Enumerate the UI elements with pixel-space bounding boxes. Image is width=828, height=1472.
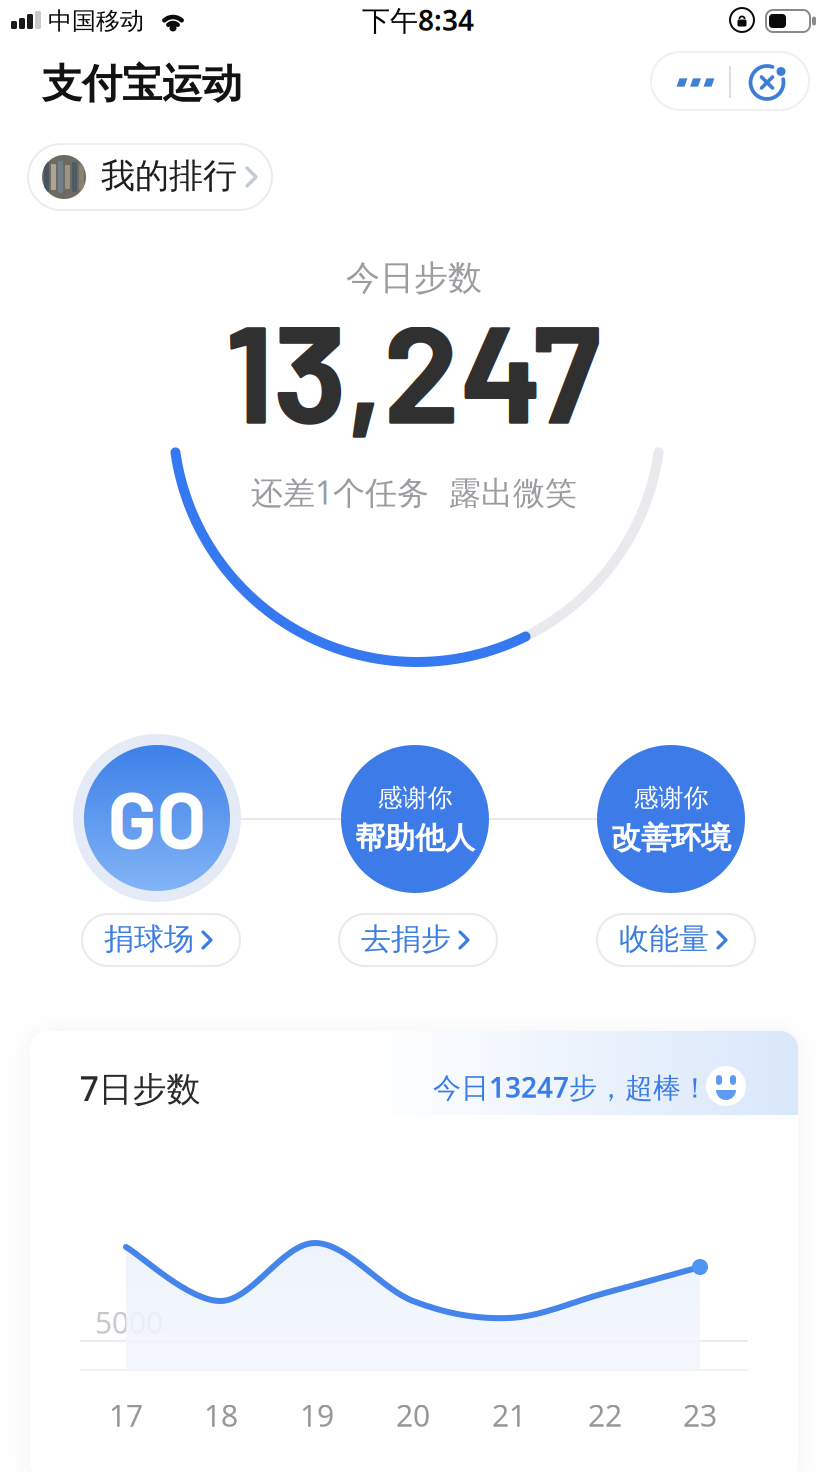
staticText: 感谢你 (633, 783, 708, 813)
staticText: 去捐步 (361, 921, 451, 957)
button[interactable]: 去捐步 (339, 914, 497, 966)
button[interactable] (731, 54, 806, 110)
staticText: 下午8:34 (362, 1, 474, 39)
staticText: 20 (396, 1395, 430, 1435)
staticText: 13,247 (225, 287, 601, 451)
staticText: 还差1个任务 露出微笑 (251, 471, 577, 513)
button[interactable]: 今日13247步，超棒！ (413, 1058, 759, 1116)
staticText: 感谢你 (377, 783, 452, 813)
staticText: 帮助他人 (355, 820, 475, 856)
staticText: 中国移动 (48, 6, 144, 36)
staticText: 我的排行 (101, 155, 237, 197)
staticText: 23 (683, 1395, 717, 1435)
staticText: 改善环境 (611, 820, 731, 856)
staticText: 支付宝运动 (42, 59, 242, 108)
button[interactable]: 感谢你 (597, 745, 745, 893)
staticText: 7日步数 (79, 1065, 200, 1111)
staticText: GO (107, 769, 206, 865)
button[interactable]: 我的排行 (28, 144, 272, 210)
button[interactable]: 感谢你 (341, 745, 489, 893)
button[interactable]: 收能量 (597, 914, 755, 966)
staticText: 今日13247步，超棒！ (433, 1068, 709, 1106)
button[interactable]: 捐球场 (82, 914, 240, 966)
staticText: 捐球场 (104, 921, 194, 957)
staticText: 5000 (95, 1302, 163, 1342)
staticText: 22 (588, 1395, 622, 1435)
staticText: 今日步数 (346, 257, 482, 299)
staticText: 19 (300, 1395, 334, 1435)
staticText: 17 (109, 1395, 143, 1435)
staticText: 收能量 (619, 921, 709, 957)
staticText: 21 (492, 1395, 526, 1435)
button[interactable] (655, 53, 730, 109)
staticText: 18 (204, 1395, 238, 1435)
button[interactable]: GO (72, 733, 242, 903)
